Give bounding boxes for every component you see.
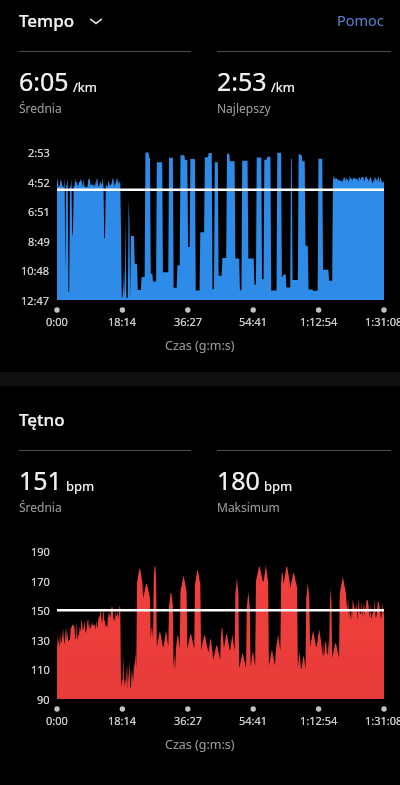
staticText: 1:12:54 <box>300 713 338 728</box>
staticText: 1:31:08 <box>365 713 400 728</box>
staticText: 1:31:08 <box>365 314 400 329</box>
staticText: 6:51 <box>28 204 50 219</box>
staticText: 18:14 <box>108 314 137 329</box>
staticText: 36:27 <box>174 713 203 728</box>
staticText: bpm <box>66 477 95 495</box>
staticText: Najlepszy <box>217 100 271 116</box>
staticText: /km <box>271 78 295 96</box>
staticText: /km <box>73 78 97 96</box>
button[interactable]: Tempo, change metric <box>0 3 113 38</box>
staticText: Średnia <box>19 100 62 116</box>
staticText: 180 <box>217 463 260 497</box>
staticText: 2:53 <box>28 145 50 160</box>
staticText: 2:53 <box>217 64 267 98</box>
staticText: 90 <box>37 692 50 707</box>
staticText: 190 <box>31 544 50 559</box>
staticText: 151 <box>19 463 62 497</box>
staticText: 4:52 <box>28 175 50 190</box>
staticText: 54:41 <box>239 314 268 329</box>
staticText: 12:47 <box>21 293 50 308</box>
staticText: Tętno <box>19 408 65 431</box>
staticText: 0:00 <box>46 713 68 728</box>
staticText: 54:41 <box>239 713 268 728</box>
staticText: 6:05 <box>19 64 69 98</box>
staticText: Maksimum <box>217 499 280 515</box>
staticText: 10:48 <box>21 263 50 278</box>
staticText: 110 <box>31 662 50 677</box>
staticText: Czas (g:m:s) <box>165 337 235 354</box>
staticText: 130 <box>31 633 50 648</box>
staticText: 1:12:54 <box>300 314 338 329</box>
button[interactable]: Pomoc <box>321 2 400 38</box>
staticText: Czas (g:m:s) <box>165 736 235 753</box>
staticText: 0:00 <box>46 314 68 329</box>
staticText: 170 <box>31 574 50 589</box>
staticText: 36:27 <box>174 314 203 329</box>
staticText: Tempo <box>19 9 75 32</box>
staticText: 8:49 <box>28 234 50 249</box>
staticText: bpm <box>264 477 293 495</box>
staticText: Pomoc <box>337 10 384 30</box>
staticText: Średnia <box>19 499 62 515</box>
staticText: 150 <box>31 603 50 618</box>
staticText: 18:14 <box>108 713 137 728</box>
